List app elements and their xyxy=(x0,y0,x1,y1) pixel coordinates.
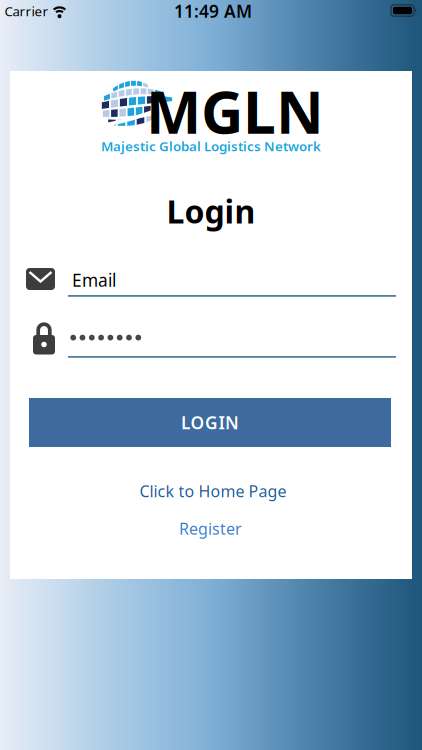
staticText: LOGIN xyxy=(181,411,239,434)
button[interactable]: Click to Home Page xyxy=(139,480,286,502)
button[interactable]: Email xyxy=(25,263,396,298)
staticText: Login xyxy=(166,190,255,232)
staticText: Majestic Global Logistics Network xyxy=(101,137,321,155)
button[interactable]: Register xyxy=(179,518,242,539)
staticText: Carrier xyxy=(4,2,48,20)
button[interactable]: Password xyxy=(25,320,396,358)
staticText: 11:49 AM xyxy=(174,0,252,22)
button[interactable]: LOGIN xyxy=(29,398,391,447)
staticText: Email xyxy=(72,268,116,291)
staticText: Click to Home Page xyxy=(139,480,286,502)
staticText: MGLN xyxy=(146,72,324,150)
staticText: Register xyxy=(179,518,242,539)
